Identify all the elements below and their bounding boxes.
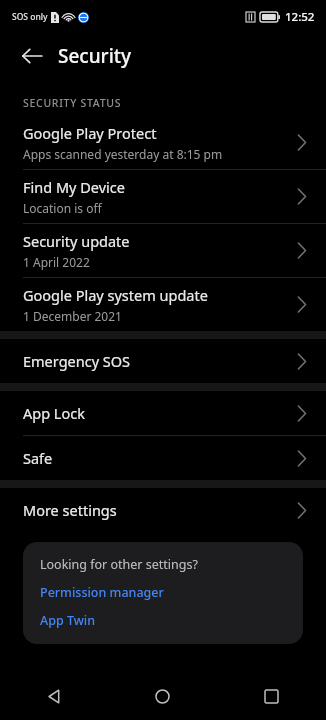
- button[interactable]: App Twin: [40, 612, 96, 629]
- button[interactable]: Google Play Protect: [0, 116, 326, 169]
- button[interactable]: Find My Device: [0, 170, 326, 223]
- staticText: Apps scanned yesterday at 8:15 pm: [23, 146, 223, 162]
- staticText: App Twin: [40, 612, 96, 629]
- staticText: Find My Device: [23, 177, 125, 197]
- button[interactable]: Safe: [0, 436, 326, 480]
- staticText: More settings: [23, 500, 117, 520]
- button[interactable]: Google Play system update: [0, 278, 326, 331]
- staticText: 12:52: [285, 9, 315, 25]
- button[interactable]: Permission manager: [40, 584, 164, 601]
- staticText: Permission manager: [40, 584, 164, 601]
- staticText: Security: [58, 43, 132, 69]
- button[interactable]: Recent apps: [217, 672, 326, 720]
- staticText: 1 April 2022: [23, 254, 90, 270]
- staticText: SOS only: [12, 11, 48, 23]
- staticText: 1 December 2021: [23, 308, 122, 324]
- button[interactable]: Home: [108, 672, 217, 720]
- button[interactable]: App Lock: [0, 391, 326, 435]
- staticText: Google Play Protect: [23, 123, 157, 143]
- button[interactable]: Back: [0, 672, 108, 720]
- staticText: App Lock: [23, 403, 85, 423]
- button[interactable]: Emergency SOS: [0, 339, 326, 383]
- button[interactable]: Back: [10, 34, 54, 78]
- staticText: Looking for other settings?: [40, 556, 198, 573]
- staticText: Google Play system update: [23, 285, 208, 305]
- button[interactable]: More settings: [0, 488, 326, 532]
- staticText: Safe: [23, 448, 53, 468]
- staticText: Security update: [23, 231, 130, 251]
- button[interactable]: Security update: [0, 224, 326, 277]
- staticText: Emergency SOS: [23, 351, 131, 371]
- staticText: SECURITY STATUS: [23, 96, 122, 110]
- staticText: Location is off: [23, 200, 102, 216]
